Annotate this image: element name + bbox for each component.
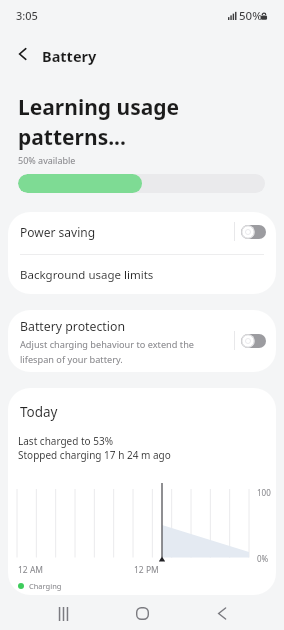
staticText: 0% [257, 553, 269, 564]
button[interactable]: Power saving [8, 212, 276, 254]
staticText: 3:05 [16, 8, 38, 23]
staticText: 12 AM [18, 564, 44, 576]
button[interactable]: Recents [33, 597, 93, 630]
staticText: Charging [29, 581, 62, 591]
staticText: 50% available [18, 154, 76, 166]
button[interactable]: Home [112, 597, 172, 630]
staticText: 50% [239, 8, 262, 24]
button[interactable]: Background usage limits [8, 255, 276, 294]
staticText: 100 [257, 487, 271, 498]
button[interactable]: Toggle [241, 225, 266, 239]
staticText: 12 PM [134, 564, 159, 576]
button[interactable]: Back [192, 597, 252, 630]
staticText: Learning usage patterns... [18, 93, 180, 151]
staticText: Power saving [20, 224, 234, 240]
button[interactable]: Back [9, 40, 37, 68]
button[interactable]: Toggle [241, 334, 266, 348]
staticText: Battery [42, 46, 97, 66]
staticText: Adjust charging behaviour to extend the … [20, 338, 194, 365]
button[interactable]: Battery protection [8, 310, 276, 372]
staticText: Battery protection [20, 318, 126, 335]
staticText: Background usage limits [20, 267, 154, 283]
staticText: Today [20, 403, 58, 421]
staticText: Last charged to 53% Stopped charging 17 … [18, 434, 171, 462]
